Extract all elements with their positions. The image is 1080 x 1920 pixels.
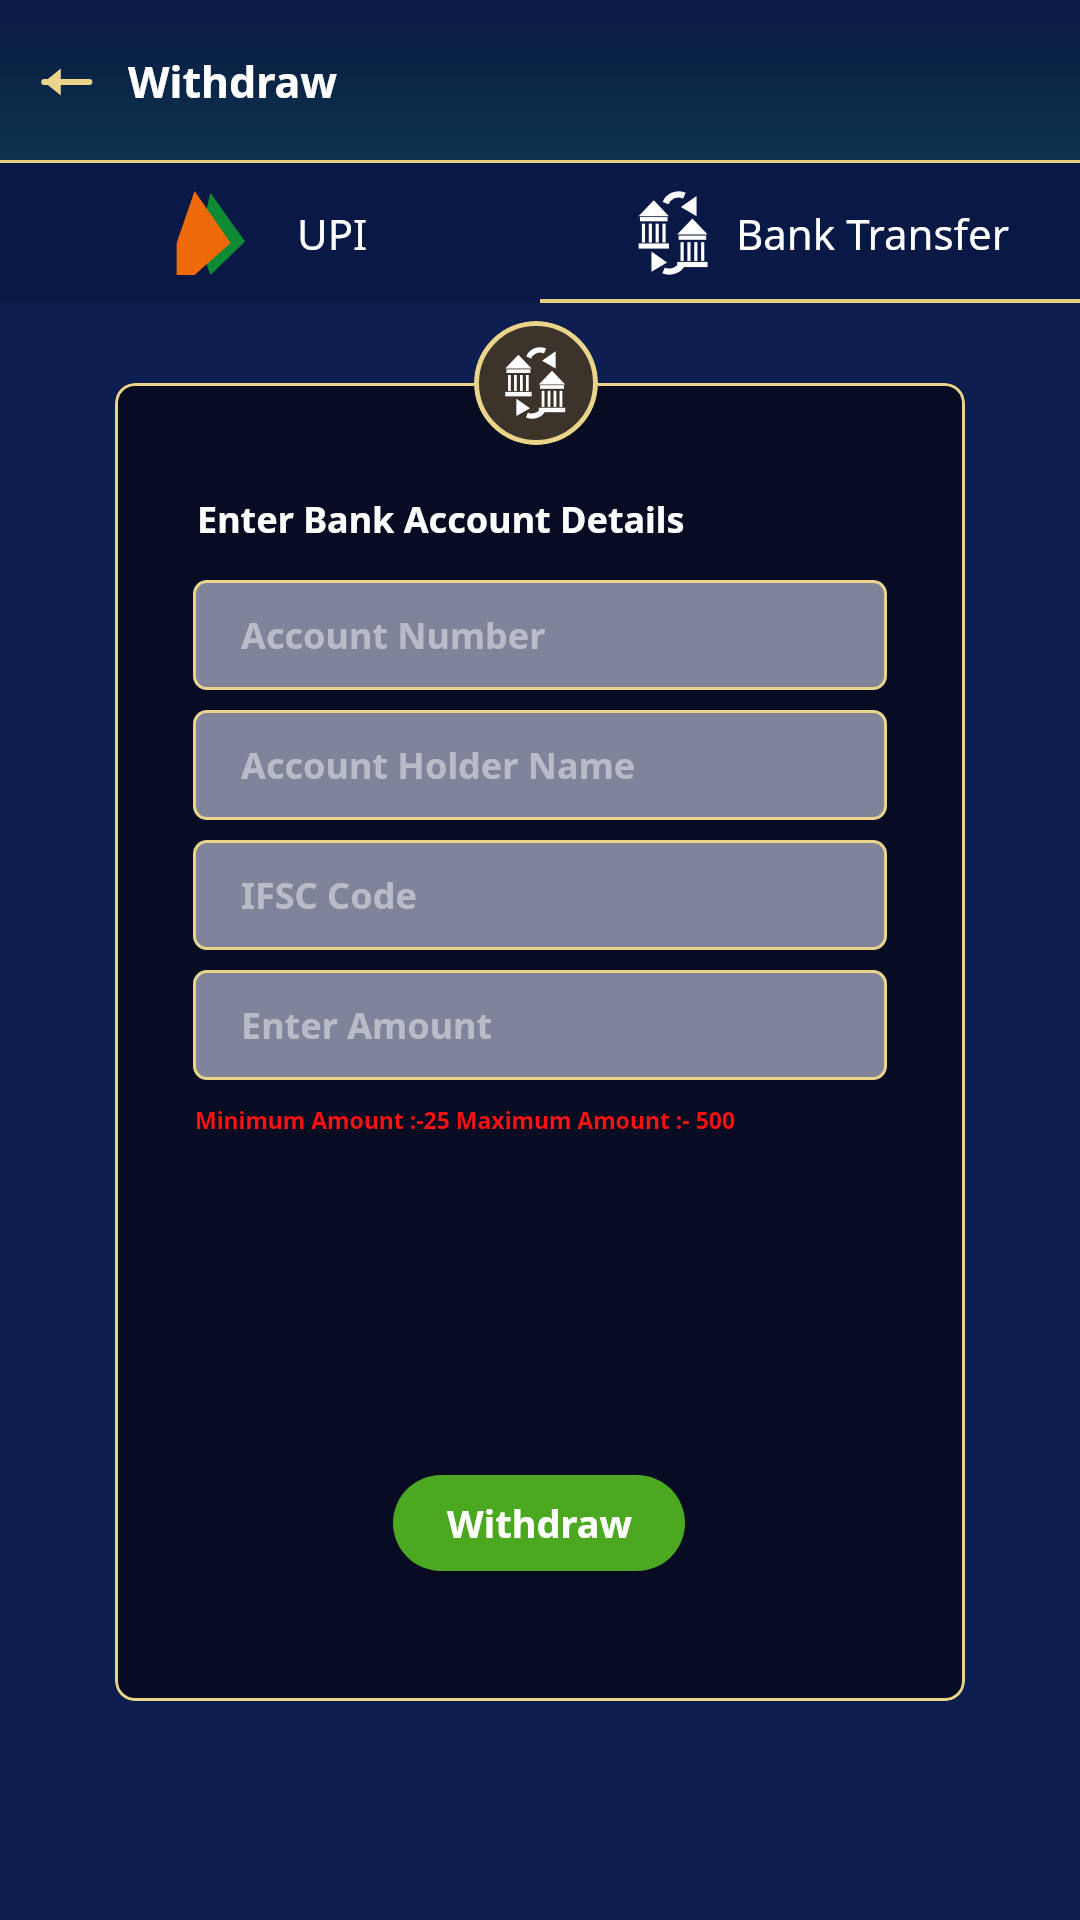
- button[interactable]: UPI: [0, 163, 540, 303]
- staticText: UPI: [297, 205, 368, 262]
- button[interactable]: Withdraw: [393, 1475, 685, 1571]
- button[interactable]: Account Number: [193, 580, 887, 690]
- button[interactable]: Enter Amount: [193, 970, 887, 1080]
- button[interactable]: Back: [30, 46, 102, 118]
- staticText: Enter Amount: [241, 1001, 493, 1050]
- button[interactable]: Account Holder Name: [193, 710, 887, 820]
- other: Bank transfer: [474, 321, 598, 445]
- button[interactable]: Bank Transfer: [540, 163, 1080, 303]
- staticText: Account Holder Name: [241, 741, 636, 790]
- staticText: Minimum Amount :-25 Maximum Amount :- 50…: [195, 1104, 736, 1135]
- staticText: Withdraw: [447, 1497, 632, 1549]
- staticText: Withdraw: [128, 52, 338, 111]
- staticText: Account Number: [241, 611, 546, 660]
- button[interactable]: IFSC Code: [193, 840, 887, 950]
- staticText: Enter Bank Account Details: [197, 495, 685, 544]
- staticText: Bank Transfer: [736, 205, 1010, 262]
- staticText: IFSC Code: [241, 871, 417, 920]
